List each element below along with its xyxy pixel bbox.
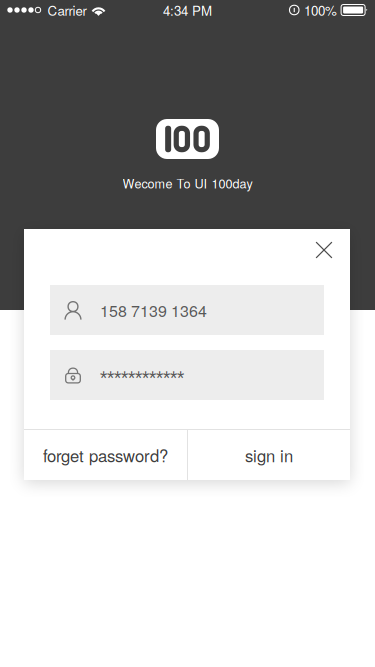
staticText: Wecome To UI 100day (122, 174, 252, 192)
staticText: sign in (245, 443, 293, 467)
staticText: 158 7139 1364 (100, 298, 207, 321)
staticText: forget password? (43, 443, 168, 467)
button[interactable]: sign in (188, 430, 350, 480)
staticText: 4:34 PM (163, 0, 212, 20)
staticText: ************ (100, 368, 184, 387)
staticText: 100% (304, 0, 337, 20)
button[interactable]: Close (306, 232, 342, 268)
button[interactable]: forget password? (24, 430, 187, 480)
staticText: Carrier (47, 0, 86, 20)
